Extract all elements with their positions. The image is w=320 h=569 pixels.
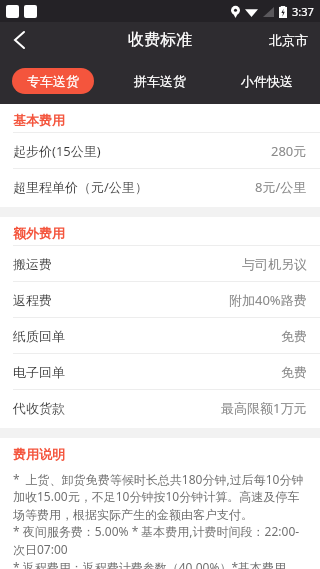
staticText: 免费 <box>281 364 307 380</box>
button[interactable]: 拼车送货 <box>106 58 213 104</box>
button[interactable]: 起步价(15公里) <box>0 133 320 168</box>
staticText: 与司机另议 <box>242 256 307 272</box>
staticText: 8元/公里 <box>255 178 307 196</box>
staticText: 最高限额1万元 <box>221 399 307 417</box>
staticText: 收费标准 <box>128 30 192 50</box>
staticText: 费用说明 <box>13 446 65 462</box>
staticText: 280元 <box>271 142 307 160</box>
button[interactable]: 超里程单价（元/公里） <box>0 169 320 204</box>
staticText: 附加40%路费 <box>229 291 307 309</box>
staticText: 3:37 <box>292 4 314 19</box>
staticText: 起步价(15公里) <box>13 142 101 160</box>
staticText: 基本费用 <box>13 112 65 128</box>
button[interactable]: 专车送货 <box>12 68 94 94</box>
staticText: 返程费 <box>13 292 52 308</box>
button[interactable]: 电子回单 <box>0 354 320 389</box>
staticText: 专车送货 <box>27 73 79 89</box>
button[interactable]: 代收货款 <box>0 390 320 425</box>
staticText: 代收货款 <box>13 400 65 416</box>
button[interactable]: 小件快送 <box>213 58 320 104</box>
staticText: 电子回单 <box>13 364 65 380</box>
staticText: 拼车送货 <box>134 73 186 89</box>
staticText: * 上货、卸货免费等候时长总共180分钟,过后每10分钟加收15.00元，不足1… <box>13 471 310 569</box>
button[interactable]: 返程费 <box>0 282 320 317</box>
staticText: 小件快送 <box>241 73 293 89</box>
staticText: 超里程单价（元/公里） <box>13 178 148 196</box>
button[interactable]: 搬运费 <box>0 246 320 281</box>
button[interactable]: 北京市 <box>269 32 320 48</box>
staticText: 纸质回单 <box>13 328 65 344</box>
button[interactable]: Back <box>0 22 38 58</box>
staticText: 免费 <box>281 328 307 344</box>
button[interactable]: 纸质回单 <box>0 318 320 353</box>
staticText: 额外费用 <box>13 225 65 241</box>
staticText: 搬运费 <box>13 256 52 272</box>
